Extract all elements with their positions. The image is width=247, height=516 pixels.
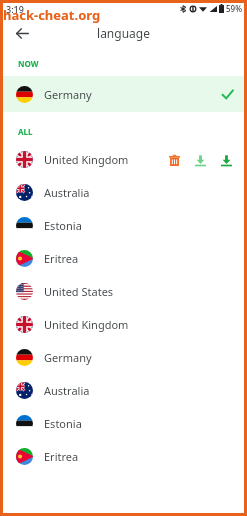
button[interactable]: Back (10, 21, 34, 45)
button[interactable]: Eritrea (0, 440, 247, 473)
staticText: Eritrea (44, 251, 79, 266)
staticText: Estonia (44, 218, 82, 233)
button[interactable]: Download United Kingdom voice (189, 149, 211, 171)
button[interactable]: Delete United Kingdom (163, 149, 185, 171)
button[interactable]: United States (0, 275, 247, 308)
button[interactable]: Download United Kingdom data (215, 149, 237, 171)
button[interactable]: Germany (0, 76, 247, 112)
button[interactable]: Eritrea (0, 242, 247, 275)
staticText: United Kingdom (44, 317, 129, 332)
staticText: ALL (18, 126, 33, 137)
staticText: Eritrea (44, 449, 79, 464)
staticText: Australia (44, 185, 90, 200)
staticText: 59% (226, 3, 242, 14)
button[interactable]: United Kingdom (0, 308, 247, 341)
staticText: hack-cheat.org (3, 6, 101, 24)
button[interactable]: Australia (0, 374, 247, 407)
staticText: Germany (44, 87, 92, 102)
button[interactable]: Estonia (0, 209, 247, 242)
button[interactable]: Estonia (0, 407, 247, 440)
staticText: Estonia (44, 416, 82, 431)
staticText: Australia (44, 383, 90, 398)
button[interactable]: United Kingdom (0, 143, 247, 176)
staticText: NOW (18, 58, 39, 69)
staticText: Germany (44, 350, 92, 365)
other: Selected (217, 84, 237, 104)
button[interactable]: Australia (0, 176, 247, 209)
staticText: United Kingdom (44, 152, 129, 167)
staticText: 3:19 (6, 3, 24, 15)
staticText: United States (44, 284, 114, 299)
button[interactable]: Germany (0, 341, 247, 374)
staticText: language (97, 25, 150, 41)
